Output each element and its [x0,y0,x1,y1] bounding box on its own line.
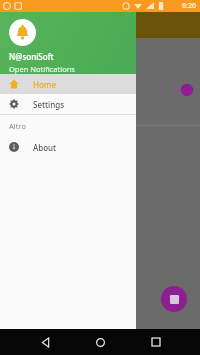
staticText: Altro [9,121,26,131]
staticText: About [33,142,57,153]
button[interactable]: Back [34,331,56,353]
staticText: Settings [33,99,65,110]
staticText: 6:20 [182,1,196,11]
button[interactable]: About [0,137,136,157]
button[interactable]: Stop service [161,286,187,312]
button[interactable]: Toggle notification service [169,82,195,98]
button[interactable]: Settings [0,94,136,114]
staticText: N@soniSoft [9,51,54,62]
staticText: Home [33,79,57,90]
button[interactable]: Home [89,331,111,353]
button[interactable]: Home [0,74,136,94]
button[interactable]: N@soniSoft [0,12,136,74]
button[interactable]: Recents [145,331,167,353]
staticText: Open Notifications [9,64,75,74]
